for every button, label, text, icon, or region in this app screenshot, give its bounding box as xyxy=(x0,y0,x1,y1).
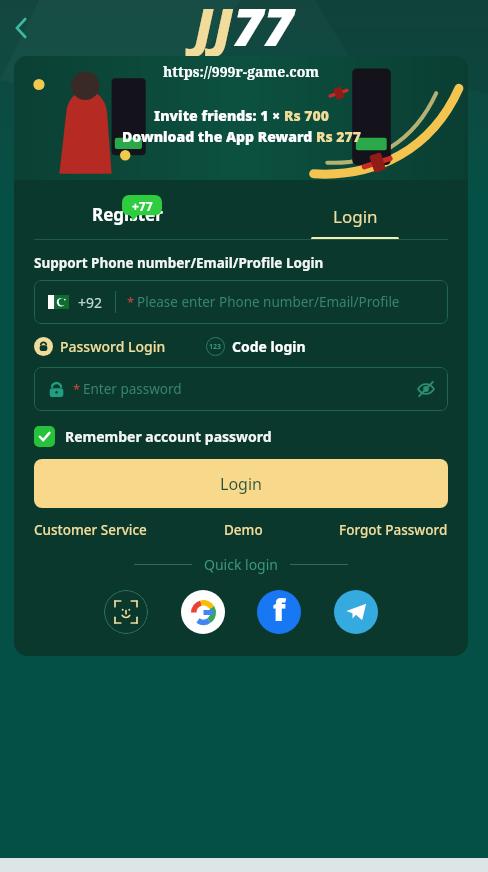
button[interactable]: Customer Service xyxy=(34,521,147,539)
staticText: * xyxy=(73,380,81,398)
staticText: Login xyxy=(333,205,378,228)
staticText: JJ xyxy=(194,0,233,61)
staticText: Login xyxy=(220,473,262,495)
staticText: Support Phone number/Email/Profile Login xyxy=(34,254,324,272)
button[interactable]: Forgot Password xyxy=(339,521,448,539)
staticText: +92 xyxy=(78,293,103,312)
button[interactable]: Sign in with Telegram xyxy=(334,590,378,634)
staticText: Rs 277 xyxy=(316,127,361,146)
button[interactable]: Sign in with Google xyxy=(181,590,225,634)
staticText: Demo xyxy=(224,521,263,539)
staticText: Invite friends: 1 × xyxy=(154,106,284,125)
staticText: Download the App Reward xyxy=(122,127,316,146)
staticText: Customer Service xyxy=(34,521,147,539)
button[interactable]: 123 xyxy=(206,337,306,356)
button[interactable]: Register xyxy=(14,180,241,240)
button[interactable]: Show password xyxy=(410,373,442,405)
staticText: 77 xyxy=(233,0,294,61)
staticText: Rs 700 xyxy=(284,106,329,125)
staticText: Password Login xyxy=(60,337,166,356)
staticText: Remember account password xyxy=(65,427,272,446)
staticText: 123 xyxy=(209,342,222,352)
button[interactable]: Face ID login xyxy=(104,590,148,634)
staticText: Enter password xyxy=(83,380,182,398)
staticText: Forgot Password xyxy=(339,521,448,539)
staticText: Register xyxy=(92,203,163,226)
button[interactable]: +92 xyxy=(34,280,448,324)
button[interactable]: Login xyxy=(241,180,468,240)
button[interactable]: Back xyxy=(2,8,42,48)
button[interactable]: Login xyxy=(34,459,448,508)
staticText: Please enter Phone number/Email/Profile xyxy=(137,293,400,311)
staticText: +77 xyxy=(132,198,153,214)
staticText: Quick login xyxy=(204,555,278,574)
staticText: https://999r-game.com xyxy=(163,62,320,81)
button[interactable]: Sign in with Facebook xyxy=(257,590,301,634)
button[interactable]: * xyxy=(34,367,448,411)
button[interactable]: Remember account password xyxy=(34,426,272,447)
staticText: f xyxy=(273,590,286,630)
staticText: Code login xyxy=(232,337,306,356)
button[interactable]: Password Login xyxy=(34,337,166,356)
staticText: * xyxy=(127,293,135,311)
button[interactable]: Demo xyxy=(224,521,263,539)
